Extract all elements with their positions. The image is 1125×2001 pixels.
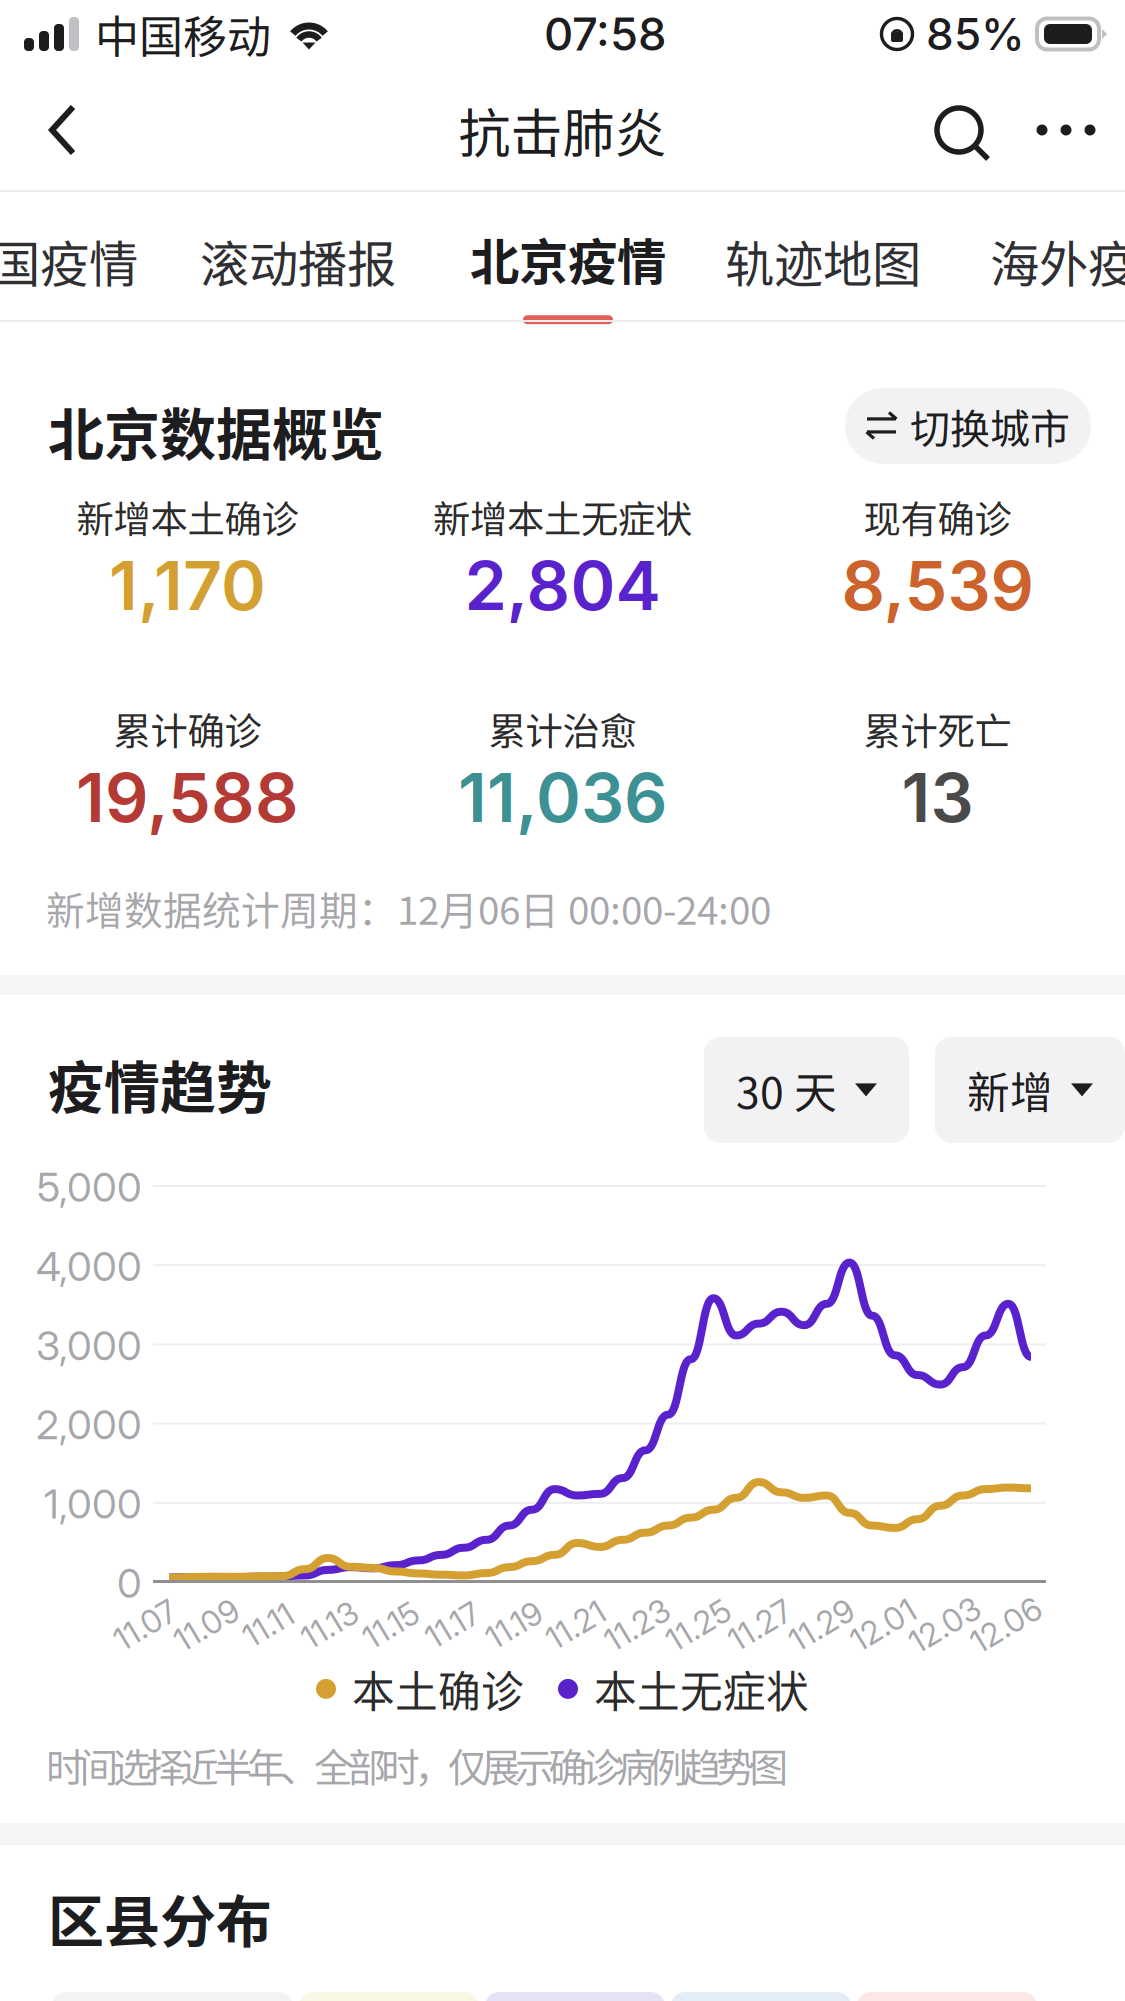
staticText: 疫情趋势 — [48, 1043, 272, 1124]
staticText: 北京疫情 — [470, 223, 666, 294]
staticText: 北京数据概览 — [48, 390, 384, 471]
staticText: 时间选择近半年、全部时，仅展示确诊病例趋势图 — [46, 1737, 788, 1793]
staticText: 12.03 — [906, 1606, 983, 1644]
staticText: 新增本土确诊 — [76, 490, 298, 544]
staticText: 5,000 — [37, 1163, 142, 1211]
staticText: 1,000 — [44, 1480, 142, 1528]
staticText: 累计死亡 — [863, 702, 1011, 756]
button[interactable]: 滚动播报 — [200, 192, 396, 322]
button[interactable]: 切换城市 — [845, 388, 1091, 464]
staticText: 本土无症状 — [594, 1658, 809, 1720]
button[interactable]: 国疫情 — [0, 192, 138, 322]
staticText: 切换城市 — [910, 397, 1070, 455]
button[interactable]: 轨迹地图 — [725, 192, 921, 322]
staticText: 国疫情 — [0, 225, 138, 296]
staticText: 11.19 — [484, 1606, 544, 1644]
button[interactable]: Search — [907, 68, 1011, 192]
staticText: 12.06 — [967, 1606, 1044, 1644]
staticText: 区县分布 — [48, 1877, 272, 1958]
button[interactable]: 新增 — [909, 1037, 1125, 1143]
button[interactable]: 海外疫 — [990, 192, 1125, 322]
staticText: 11.15 — [361, 1606, 421, 1644]
staticText: 11.13 — [299, 1606, 359, 1644]
staticText: 4,000 — [36, 1242, 142, 1291]
staticText: 11.25 — [663, 1606, 733, 1644]
staticText: 11.17 — [423, 1606, 481, 1644]
staticText: 11.11 — [241, 1606, 294, 1644]
staticText: 11.27 — [726, 1606, 794, 1644]
staticText: 0 — [117, 1559, 142, 1607]
staticText: 19,588 — [76, 756, 299, 838]
staticText: 85% — [926, 7, 1025, 61]
staticText: 2,804 — [464, 544, 660, 626]
staticText: 3,000 — [36, 1321, 142, 1370]
staticText: 轨迹地图 — [725, 225, 921, 296]
staticText: 07:58 — [544, 7, 667, 61]
staticText: 累计治愈 — [488, 702, 636, 756]
staticText: 海外疫 — [990, 225, 1125, 296]
staticText: 本土确诊 — [352, 1658, 524, 1720]
staticText: 1,170 — [109, 544, 266, 626]
staticText: 新增数据统计周期：12月06日 00:00-24:00 — [46, 880, 771, 936]
button[interactable]: Back — [10, 68, 116, 192]
button[interactable]: More — [1011, 68, 1121, 192]
staticText: 累计确诊 — [113, 702, 261, 756]
staticText: 13 — [901, 756, 973, 838]
staticText: 11.21 — [544, 1606, 607, 1644]
staticText: 现有确诊 — [863, 490, 1011, 544]
staticText: 11.29 — [786, 1606, 856, 1644]
staticText: 11.23 — [602, 1606, 672, 1644]
staticText: 30 天 — [736, 1059, 837, 1121]
staticText: 新增 — [967, 1059, 1053, 1121]
button[interactable]: 北京疫情 — [470, 192, 666, 322]
staticText: 8,539 — [841, 544, 1033, 626]
staticText: 12.01 — [848, 1606, 918, 1644]
staticText: 新增本土无症状 — [433, 490, 692, 544]
staticText: 中国移动 — [95, 2, 271, 66]
button[interactable]: 30 天 — [704, 1037, 909, 1143]
staticText: 滚动播报 — [200, 225, 396, 296]
staticText: 11.07 — [111, 1606, 178, 1644]
staticText: 抗击肺炎 — [458, 92, 666, 168]
staticText: 11,036 — [458, 756, 667, 838]
staticText: 11.09 — [171, 1606, 241, 1644]
staticText: 2,000 — [36, 1401, 142, 1449]
